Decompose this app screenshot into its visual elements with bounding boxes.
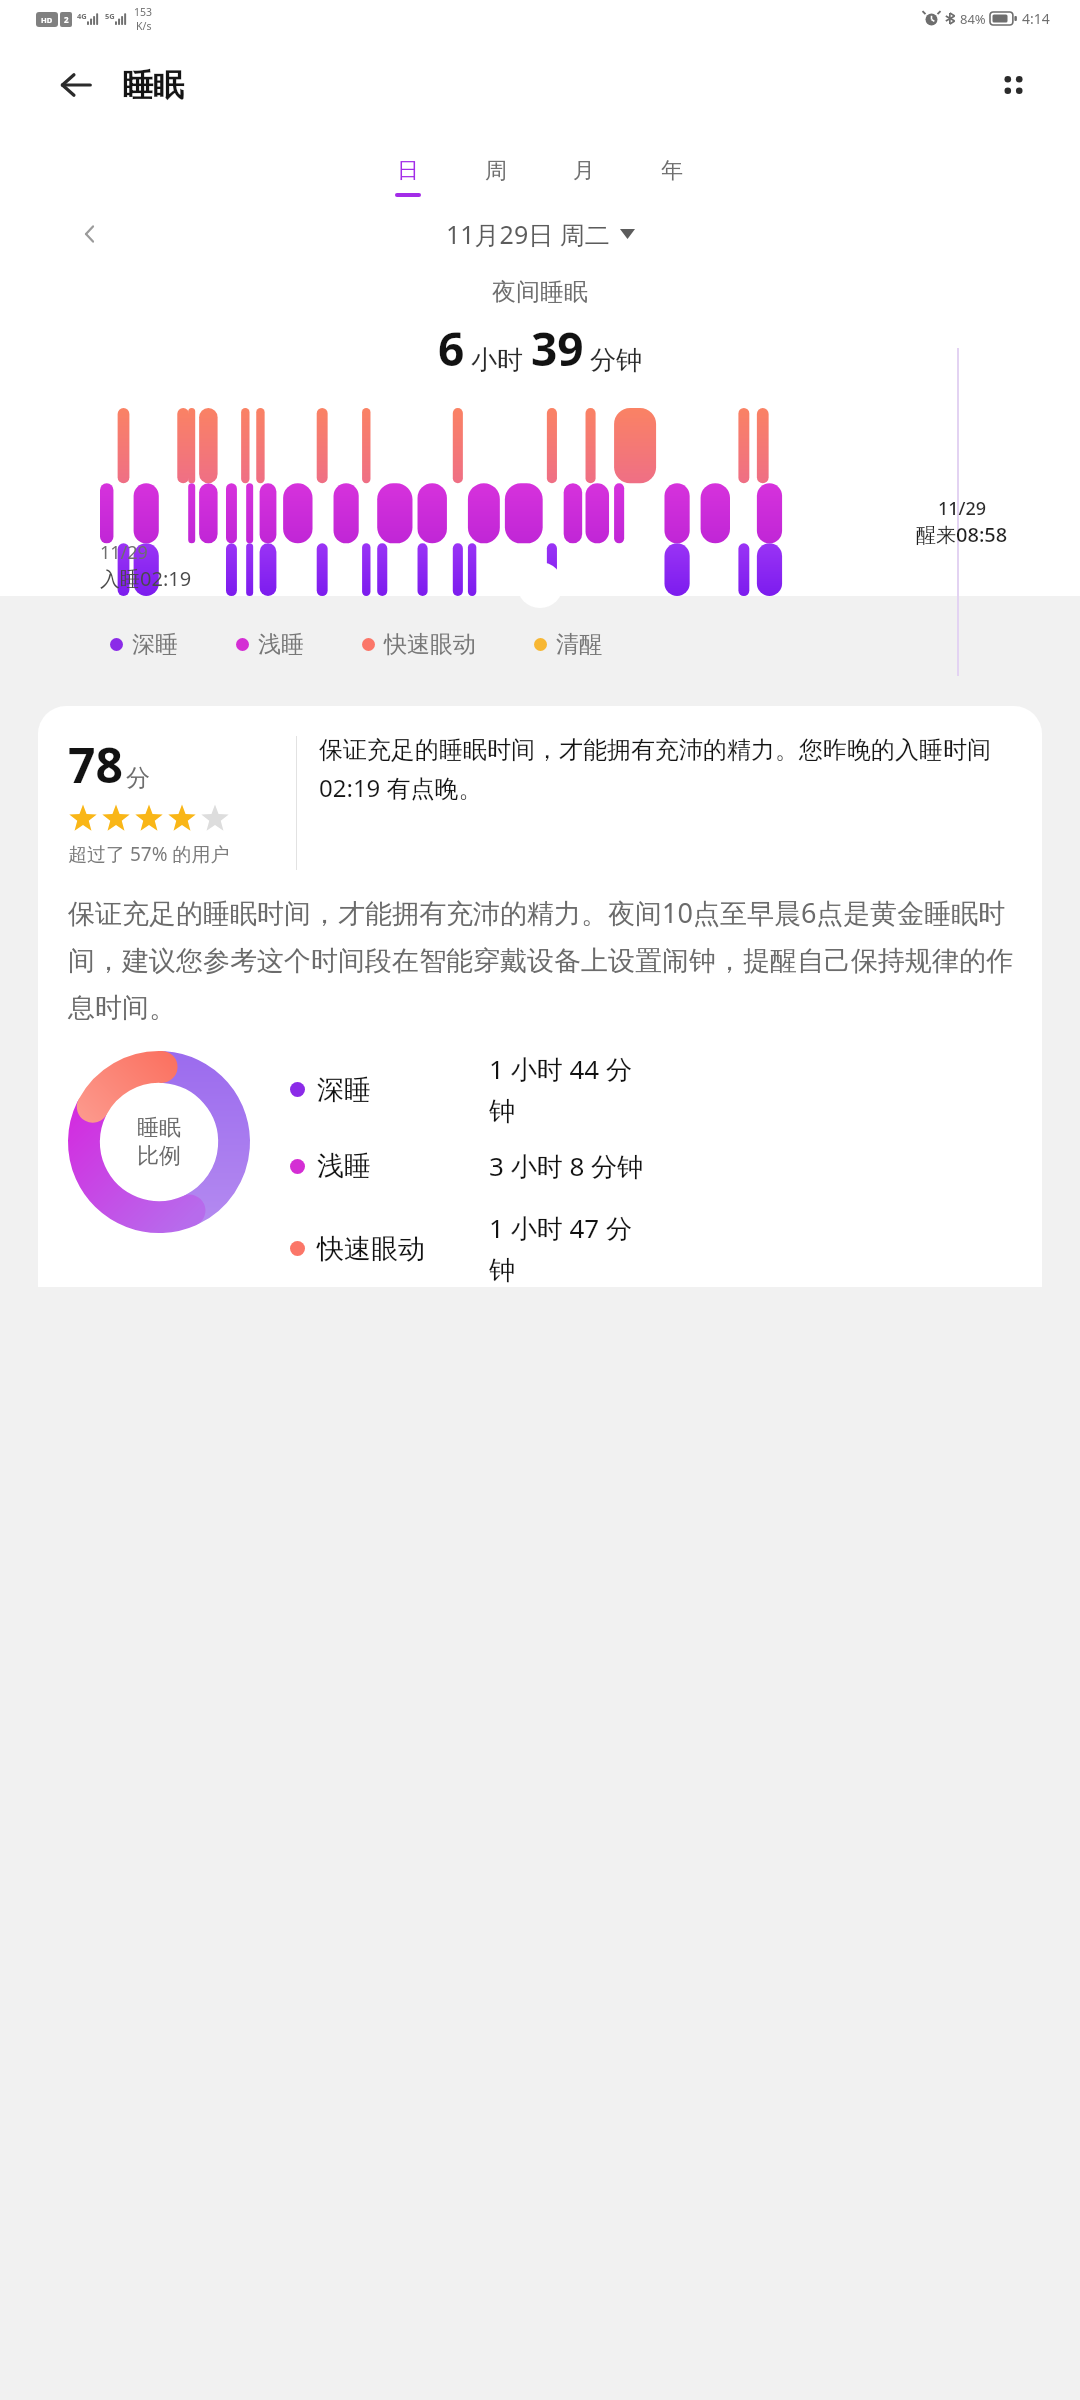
button[interactable]: 月 bbox=[540, 155, 628, 199]
staticText: 分 bbox=[126, 763, 150, 793]
staticText: 保证充足的睡眠时间，才能拥有充沛的精力。您昨晚的入睡时间 02:19 有点晚。 bbox=[319, 732, 1016, 804]
button[interactable]: 深睡 bbox=[110, 630, 178, 659]
staticText: 超过了 57% 的用户 bbox=[68, 841, 230, 867]
staticText: 月 bbox=[573, 157, 595, 185]
staticText: 深睡 bbox=[317, 1073, 489, 1107]
staticText: 睡眠 bbox=[137, 1114, 181, 1142]
staticText: K/s bbox=[136, 19, 152, 33]
staticText: 4:14 bbox=[1022, 9, 1050, 28]
button[interactable]: 周 bbox=[452, 155, 540, 199]
staticText: 年 bbox=[661, 157, 683, 185]
staticText: 4G bbox=[77, 11, 87, 21]
staticText: 153 bbox=[134, 5, 153, 19]
staticText: 清醒 bbox=[556, 630, 602, 659]
staticText: 醒来08:58 bbox=[916, 521, 1008, 548]
staticText: 78 bbox=[68, 732, 123, 797]
staticText: 39 bbox=[531, 317, 584, 380]
staticText: 11/29 bbox=[938, 496, 987, 521]
staticText: 睡眠 bbox=[122, 66, 184, 105]
button[interactable]: 年 bbox=[628, 155, 716, 199]
staticText: 快速眼动 bbox=[384, 630, 476, 659]
button[interactable]: 快速眼动 bbox=[290, 1210, 1016, 1287]
button[interactable]: 11月29日 周二 bbox=[446, 217, 635, 251]
staticText: 深睡 bbox=[132, 630, 178, 659]
staticText: 84% bbox=[960, 10, 986, 28]
button[interactable]: 更多选项 bbox=[984, 56, 1042, 114]
staticText: 5G bbox=[105, 11, 115, 21]
staticText: 1 小时 47 分 钟 bbox=[489, 1210, 632, 1287]
staticText: 3 小时 8 分钟 bbox=[489, 1148, 644, 1184]
button[interactable]: 深睡 bbox=[290, 1051, 1016, 1128]
staticText: 小时 bbox=[471, 344, 523, 377]
staticText: 快速眼动 bbox=[317, 1232, 489, 1266]
staticText: 6 bbox=[438, 317, 465, 380]
staticText: 11/29 bbox=[100, 540, 148, 565]
staticText: 夜间睡眠 bbox=[492, 277, 588, 307]
button[interactable]: 清醒 bbox=[534, 630, 602, 659]
staticText: 比例 bbox=[137, 1142, 181, 1170]
button[interactable]: 快速眼动 bbox=[362, 630, 476, 659]
staticText: 周 bbox=[485, 157, 507, 185]
staticText: 日 bbox=[397, 157, 419, 185]
button[interactable]: 78 bbox=[38, 706, 1042, 1287]
button[interactable]: 浅睡 bbox=[290, 1148, 1016, 1184]
staticText: HD bbox=[41, 15, 53, 25]
staticText: 11月29日 周二 bbox=[446, 217, 610, 251]
staticText: 保证充足的睡眠时间，才能拥有充沛的精力。夜间10点至早晨6点是黄金睡眠时间，建议… bbox=[68, 894, 1016, 1025]
staticText: 浅睡 bbox=[258, 630, 304, 659]
button[interactable]: 日 bbox=[364, 155, 452, 199]
button[interactable]: 浅睡 bbox=[236, 630, 304, 659]
staticText: 2 bbox=[64, 14, 69, 25]
staticText: 浅睡 bbox=[317, 1149, 489, 1183]
staticText: 入睡02:19 bbox=[100, 565, 192, 592]
button[interactable]: 前一天 bbox=[68, 212, 112, 256]
staticText: 分钟 bbox=[590, 344, 642, 377]
staticText: 1 小时 44 分 钟 bbox=[489, 1051, 632, 1128]
button[interactable]: 返回 bbox=[48, 57, 104, 113]
